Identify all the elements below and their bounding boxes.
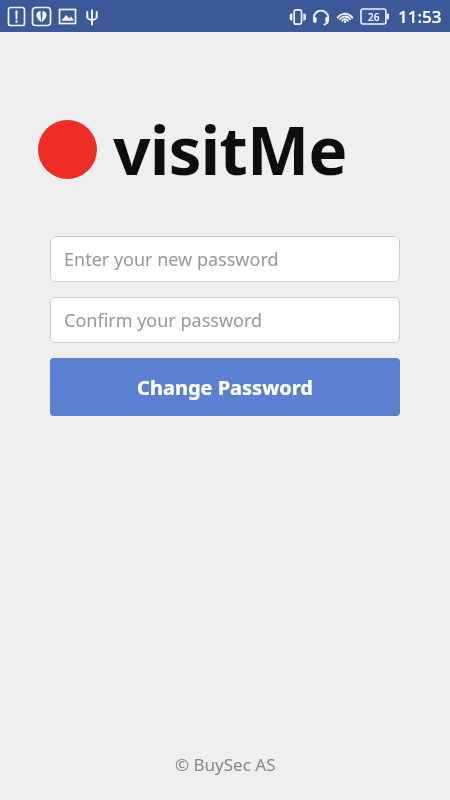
button[interactable]: Confirm your password (50, 297, 400, 343)
staticText: Enter your new password (64, 247, 279, 272)
button[interactable]: Enter your new password (50, 236, 400, 282)
staticText: 11:53 (398, 5, 442, 28)
staticText: © BuySec AS (175, 753, 276, 776)
staticText: 26 (368, 10, 380, 24)
button[interactable]: Change Password (50, 358, 400, 416)
staticText: Change Password (137, 374, 313, 401)
staticText: Confirm your password (64, 308, 263, 333)
staticText: visitMe (113, 104, 347, 194)
